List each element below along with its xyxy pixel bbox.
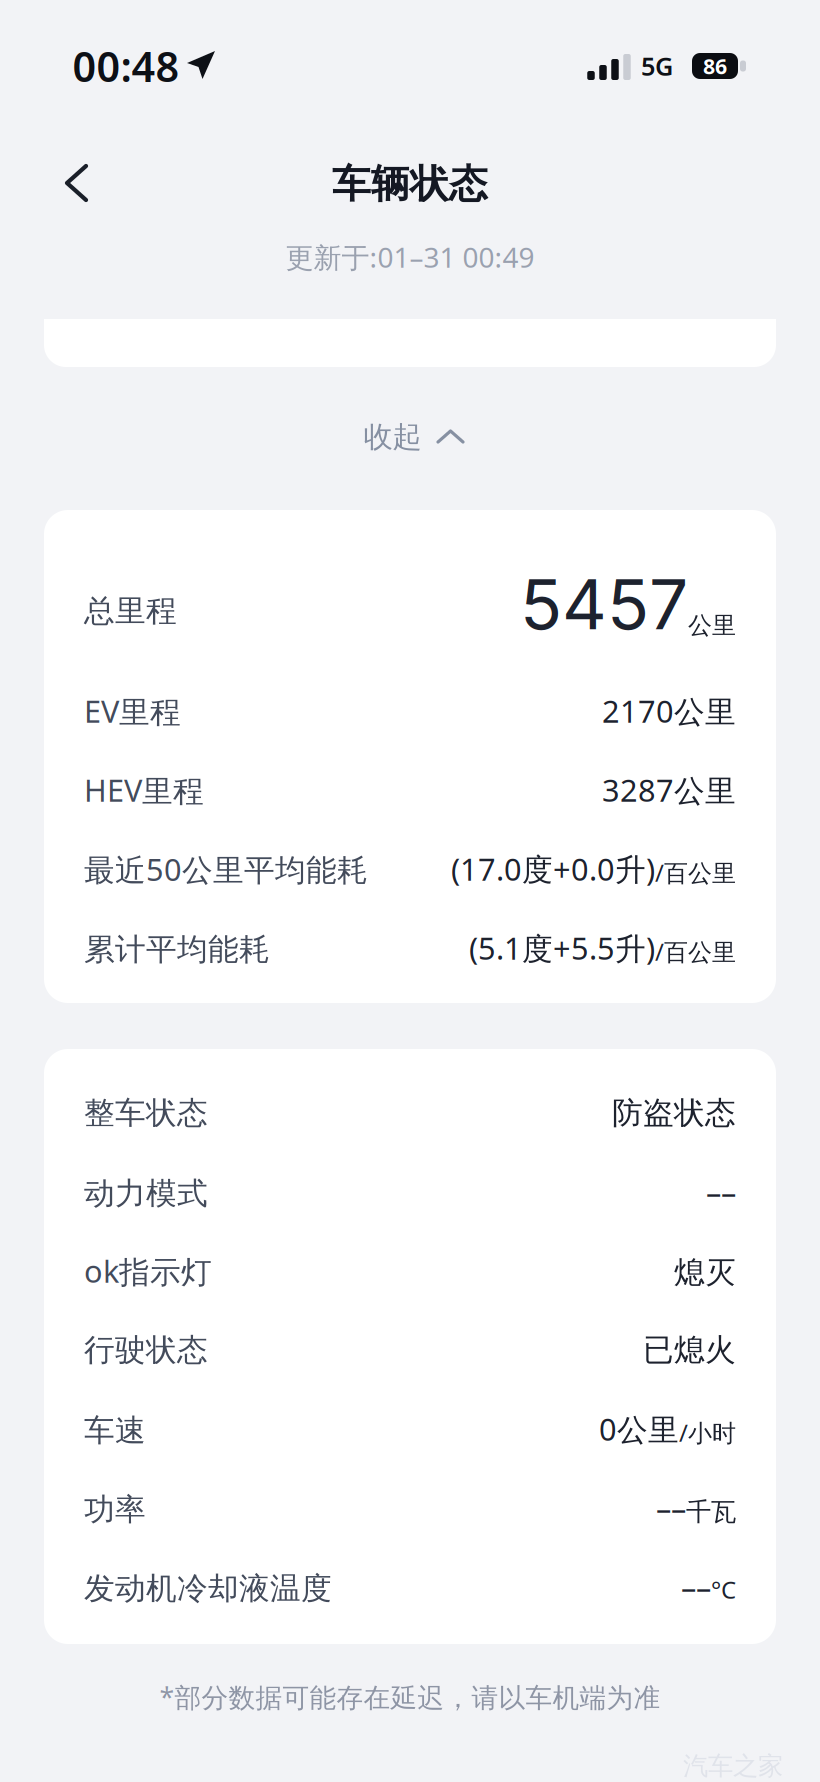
- staticText: 车速: [84, 1412, 146, 1449]
- staticText: 车辆状态: [332, 160, 488, 208]
- staticText: 2170公里: [602, 691, 736, 731]
- staticText: 熄灭: [674, 1254, 736, 1291]
- staticText: 总里程: [84, 592, 177, 630]
- staticText: 更新于:01–31 00:49: [285, 238, 534, 276]
- staticText: 5G: [641, 49, 673, 83]
- staticText: 5457公里: [520, 563, 736, 645]
- staticText: 86: [703, 52, 727, 80]
- staticText: 3287公里: [602, 770, 736, 810]
- staticText: 整车状态: [84, 1094, 208, 1132]
- staticText: (17.0度+0.0升)/百公里: [451, 848, 736, 889]
- button[interactable]: Back: [46, 153, 106, 213]
- staticText: HEV里程: [84, 770, 204, 810]
- staticText: 功率: [84, 1491, 146, 1528]
- staticText: (5.1度+5.5升)/百公里: [469, 928, 736, 968]
- staticText: ––千瓦: [656, 1488, 736, 1528]
- staticText: 最近50公里平均能耗: [84, 849, 368, 890]
- staticText: ––°C: [681, 1567, 736, 1607]
- staticText: 防盗状态: [612, 1094, 736, 1132]
- button[interactable]: 收起: [353, 412, 474, 462]
- staticText: 动力模式: [84, 1175, 208, 1212]
- staticText: EV里程: [84, 691, 181, 731]
- staticText: 00:48: [72, 39, 179, 93]
- staticText: 已熄火: [643, 1331, 736, 1369]
- staticText: 0公里/小时: [599, 1409, 736, 1449]
- staticText: 行驶状态: [84, 1331, 208, 1369]
- staticText: *部分数据可能存在延迟，请以车机端为准: [159, 1679, 660, 1715]
- staticText: ––: [706, 1172, 736, 1212]
- staticText: 收起: [363, 419, 421, 455]
- staticText: 累计平均能耗: [84, 931, 270, 968]
- staticText: ok指示灯: [84, 1251, 212, 1291]
- staticText: 发动机冷却液温度: [84, 1570, 332, 1607]
- staticText: 汽车之家: [683, 1750, 783, 1781]
